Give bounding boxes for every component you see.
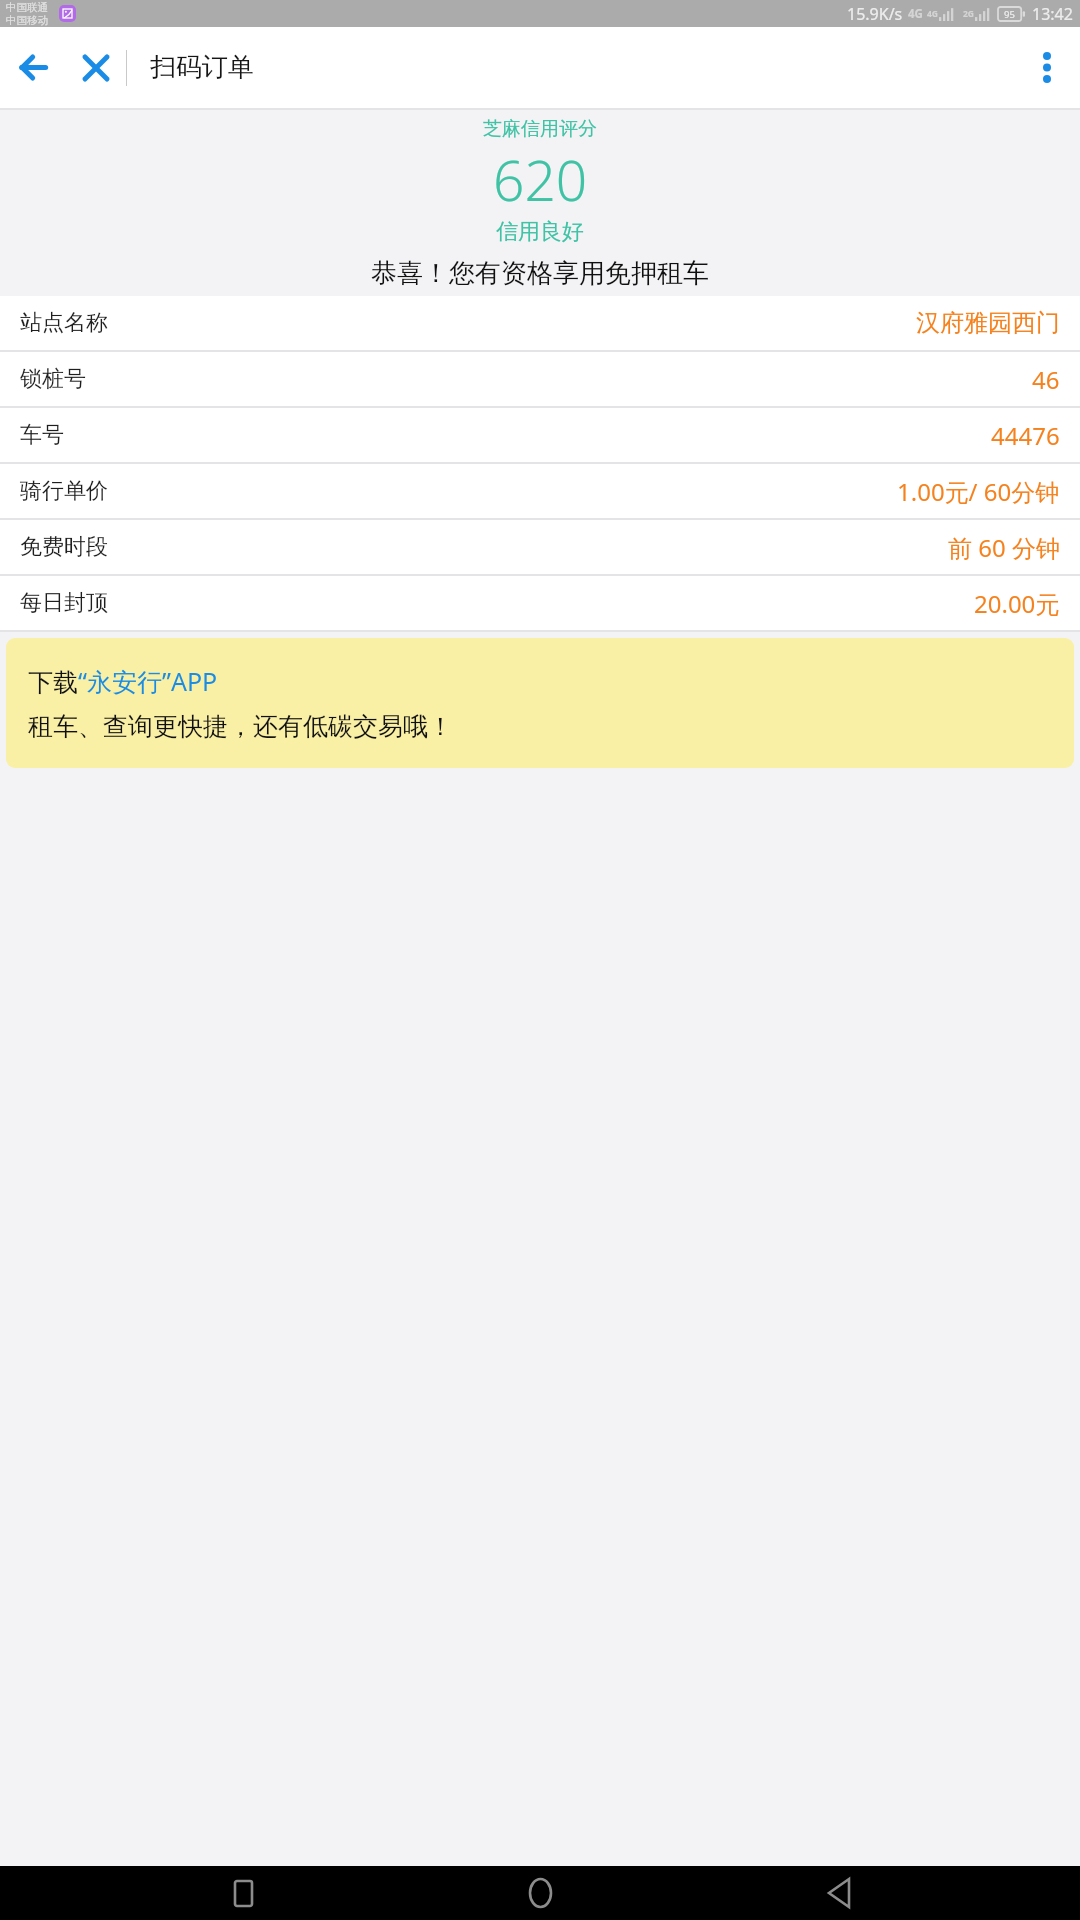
staticText: 信用良好 (496, 218, 584, 246)
staticText: 4G (908, 6, 923, 22)
staticText: 锁桩号 (20, 365, 86, 393)
staticText: 芝麻信用评分 (483, 117, 597, 141)
button[interactable]: 骑行单价 (0, 464, 1080, 518)
staticText: 15.9K/s (847, 3, 903, 25)
button[interactable]: 免费时段 (0, 520, 1080, 574)
staticText: 95 (1004, 8, 1015, 21)
staticText: 中国移动 (6, 14, 48, 27)
staticText: 车号 (20, 421, 64, 449)
staticText: 站点名称 (20, 309, 108, 337)
button[interactable]: More options (1014, 27, 1080, 108)
staticText: 1.00元/ 60分钟 (897, 475, 1060, 508)
staticText: 4G (927, 8, 939, 20)
staticText: 620 (493, 142, 588, 217)
staticText: 前 60 分钟 (948, 531, 1060, 564)
staticText: 骑行单价 (20, 477, 108, 505)
staticText: 下载 (28, 667, 78, 698)
button[interactable]: Recents (188, 1866, 298, 1920)
staticText: 20.00元 (974, 587, 1060, 620)
button[interactable]: 站点名称 (0, 296, 1080, 350)
button[interactable]: Close (66, 27, 126, 108)
staticText: 44476 (991, 419, 1060, 452)
staticText: 每日封顶 (20, 589, 108, 617)
staticText: “永安行”APP (78, 664, 218, 698)
button[interactable]: 下载 (6, 638, 1074, 768)
button[interactable]: Back (0, 27, 66, 108)
staticText: 汉府雅园西门 (916, 308, 1060, 338)
button[interactable]: Back (783, 1866, 893, 1920)
staticText: 免费时段 (20, 533, 108, 561)
button[interactable]: 锁桩号 (0, 352, 1080, 406)
staticText: 扫码订单 (150, 51, 254, 84)
button[interactable]: 每日封顶 (0, 576, 1080, 630)
staticText: 恭喜！您有资格享用免押租车 (371, 257, 709, 290)
staticText: 13:42 (1032, 3, 1073, 25)
staticText: 租车、查询更快捷，还有低碳交易哦！ (28, 711, 453, 742)
button[interactable]: 车号 (0, 408, 1080, 462)
staticText: 2G (963, 8, 975, 20)
button[interactable]: Home (485, 1866, 595, 1920)
staticText: 46 (1032, 363, 1060, 396)
staticText: 中国联通 (6, 1, 48, 14)
